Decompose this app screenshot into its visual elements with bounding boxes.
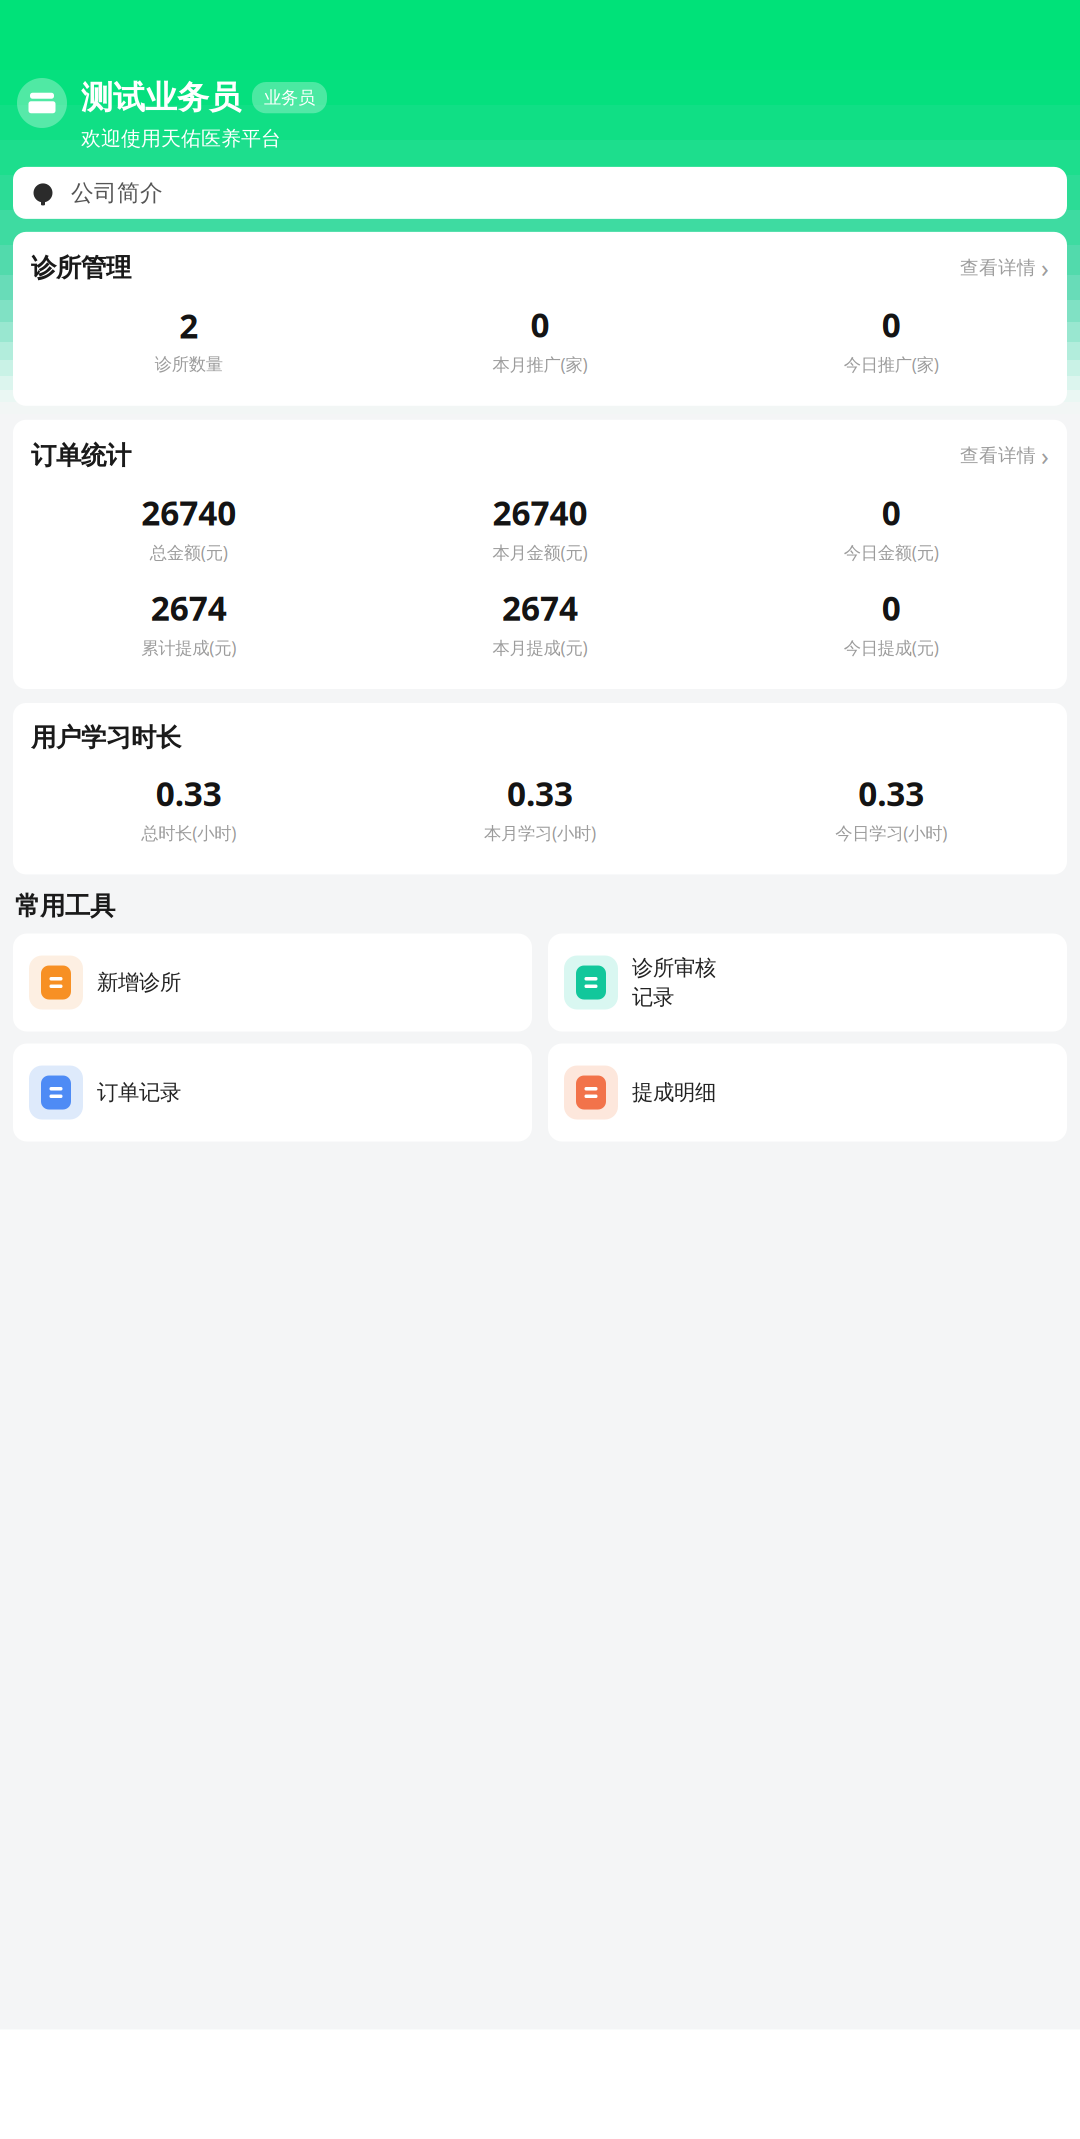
staticText: 诊所管理 xyxy=(31,252,131,283)
button[interactable]: 查看详情 xyxy=(960,251,1049,284)
staticText: 订单记录 xyxy=(97,1079,181,1106)
staticText: 0 xyxy=(530,302,549,347)
staticText: 0.33 xyxy=(156,771,222,815)
button[interactable]: 新增诊所 xyxy=(13,933,532,1031)
button[interactable]: 公司简介 xyxy=(13,167,1067,219)
staticText: 今日推广(家) xyxy=(844,353,939,376)
staticText: 今日提成(元) xyxy=(844,636,939,659)
staticText: › xyxy=(1041,251,1049,284)
staticText: 欢迎使用天佑医养平台 xyxy=(81,126,281,151)
staticText: 本月推广(家) xyxy=(492,353,587,376)
staticText: 公司简介 xyxy=(71,179,163,207)
staticText: 0 xyxy=(882,302,901,347)
button[interactable]: 诊所审核 xyxy=(548,933,1067,1031)
staticText: 提成明细 xyxy=(632,1079,716,1106)
staticText: 用户学习时长 xyxy=(31,722,181,753)
staticText: 2674 xyxy=(151,586,227,630)
button[interactable]: 查看详情 xyxy=(960,439,1049,472)
staticText: 订单统计 xyxy=(31,440,131,471)
staticText: 2 xyxy=(179,303,198,348)
staticText: 0 xyxy=(882,586,901,630)
staticText: 本月学习(小时) xyxy=(484,821,596,844)
staticText: 业务员 xyxy=(264,87,315,108)
staticText: 0.33 xyxy=(858,771,924,815)
button[interactable]: 订单记录 xyxy=(13,1043,532,1141)
staticText: 0.33 xyxy=(507,771,573,815)
staticText: 本月金额(元) xyxy=(492,541,587,564)
staticText: 总时长(小时) xyxy=(141,821,236,844)
staticText: 累计提成(元) xyxy=(141,636,236,659)
staticText: 新增诊所 xyxy=(97,969,181,996)
staticText: 诊所审核 xyxy=(632,955,716,981)
staticText: 常用工具 xyxy=(15,890,115,921)
staticText: 记录 xyxy=(632,984,674,1010)
staticText: 测试业务员 xyxy=(81,78,241,117)
staticText: 诊所数量 xyxy=(155,354,223,375)
staticText: 本月提成(元) xyxy=(492,636,587,659)
staticText: 26740 xyxy=(141,490,236,535)
staticText: 26740 xyxy=(492,490,587,535)
staticText: 2674 xyxy=(502,586,578,630)
staticText: 总金额(元) xyxy=(150,541,228,564)
staticText: 查看详情 xyxy=(960,444,1036,467)
staticText: 0 xyxy=(882,490,901,535)
button[interactable]: 提成明细 xyxy=(548,1043,1067,1141)
staticText: 查看详情 xyxy=(960,256,1036,279)
staticText: › xyxy=(1041,439,1049,472)
staticText: 今日学习(小时) xyxy=(835,821,947,844)
staticText: 今日金额(元) xyxy=(844,541,939,564)
